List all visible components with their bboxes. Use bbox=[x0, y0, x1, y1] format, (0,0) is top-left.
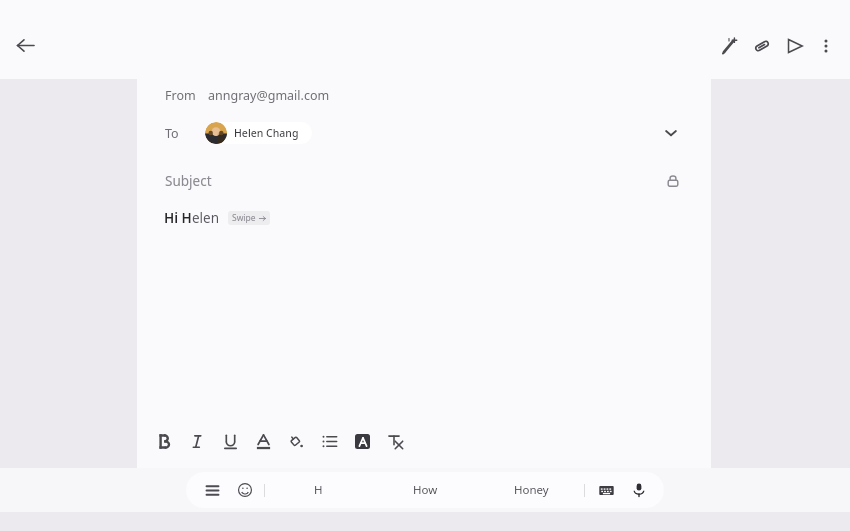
button[interactable]: Bold bbox=[148, 425, 181, 458]
button[interactable]: Hi H bbox=[137, 205, 711, 231]
button[interactable]: Smart compose bbox=[719, 36, 739, 56]
button[interactable]: Keyboard settings bbox=[199, 477, 225, 503]
button[interactable]: Voice input bbox=[626, 477, 652, 503]
staticText: Honey bbox=[514, 482, 549, 498]
button[interactable]: Send bbox=[785, 36, 805, 56]
staticText: Subject bbox=[165, 172, 212, 190]
button[interactable]: H bbox=[265, 472, 372, 508]
button[interactable]: Honey bbox=[478, 472, 584, 508]
button[interactable]: Back bbox=[8, 28, 42, 62]
button[interactable]: Highlight colour bbox=[280, 425, 313, 458]
staticText: H bbox=[314, 482, 323, 498]
button[interactable]: How bbox=[372, 472, 478, 508]
button[interactable]: Confidential mode bbox=[662, 170, 684, 192]
staticText: elen bbox=[192, 209, 220, 227]
button[interactable]: Underline bbox=[214, 425, 247, 458]
button[interactable]: Text colour bbox=[247, 425, 280, 458]
staticText: anngray@gmail.com bbox=[208, 87, 330, 104]
button[interactable]: Subject bbox=[137, 167, 711, 195]
staticText: Swipe bbox=[232, 212, 256, 224]
button[interactable]: More options bbox=[816, 36, 836, 56]
staticText: From bbox=[165, 87, 196, 104]
staticText: Hi H bbox=[164, 209, 192, 227]
staticText: Helen Chang bbox=[234, 126, 299, 140]
staticText: How bbox=[413, 482, 438, 498]
button[interactable]: Italic bbox=[181, 425, 214, 458]
button[interactable]: Text formatting bbox=[346, 425, 379, 458]
button[interactable]: Attach file bbox=[752, 36, 772, 56]
button[interactable]: Clear formatting bbox=[379, 425, 412, 458]
button[interactable]: Expand recipients bbox=[658, 120, 684, 146]
button[interactable]: Emoji bbox=[232, 477, 258, 503]
button[interactable]: Switch keyboard bbox=[593, 477, 619, 503]
button[interactable]: Helen Chang bbox=[205, 122, 312, 144]
button[interactable]: From bbox=[137, 79, 711, 112]
staticText: To bbox=[165, 125, 179, 142]
button[interactable]: Bulleted list bbox=[313, 425, 346, 458]
button[interactable]: To bbox=[137, 112, 711, 154]
